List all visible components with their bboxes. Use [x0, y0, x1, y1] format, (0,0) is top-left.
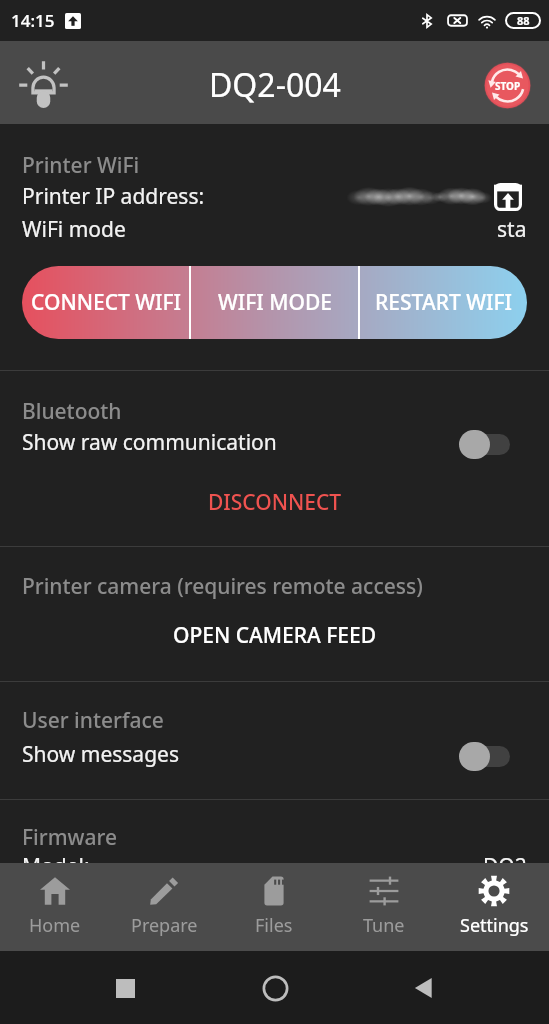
staticText: Files [255, 913, 293, 938]
button[interactable]: Toggle [459, 430, 510, 459]
staticText: Firmware [22, 823, 118, 852]
staticText: WIFI MODE [218, 288, 332, 317]
button[interactable]: Files [219, 863, 329, 951]
staticText: Home [29, 913, 81, 938]
staticText: Settings [460, 913, 529, 938]
staticText: DISCONNECT [208, 488, 342, 517]
button[interactable]: Tune [329, 863, 439, 951]
button[interactable]: CONNECT WIFI [22, 266, 189, 339]
button[interactable]: Settings [439, 863, 549, 951]
staticText: 88 [517, 13, 530, 28]
staticText: Bluetooth [22, 397, 122, 426]
staticText: Show raw communication [22, 428, 277, 457]
button[interactable]: Stop [478, 56, 536, 114]
button[interactable]: Open in browser [493, 182, 522, 211]
staticText: Printer WiFi [22, 151, 140, 180]
staticText: RESTART WIFI [375, 288, 512, 317]
staticText: 14:15 [11, 9, 55, 32]
staticText: CONNECT WIFI [31, 288, 181, 317]
button[interactable]: Home [250, 963, 300, 1013]
staticText: STOP [495, 79, 521, 93]
staticText: Printer IP address: [22, 182, 205, 211]
button[interactable]: Toggle light [12, 52, 74, 114]
staticText: Printer camera (requires remote access) [22, 572, 423, 601]
staticText: User interface [22, 706, 164, 735]
staticText: DQ2-004 [209, 63, 341, 107]
button[interactable]: DISCONNECT [0, 488, 549, 517]
button[interactable]: Home [0, 863, 109, 951]
button[interactable]: RESTART WIFI [360, 266, 527, 339]
staticText: sta [497, 215, 527, 244]
staticText: Prepare [131, 913, 198, 938]
button[interactable]: Back [399, 963, 449, 1013]
button[interactable]: Prepare [109, 863, 219, 951]
staticText: Show messages [22, 740, 179, 769]
staticText: Tune [363, 913, 405, 938]
button[interactable]: WIFI MODE [191, 266, 358, 339]
button[interactable]: Toggle [459, 742, 510, 771]
staticText: OPEN CAMERA FEED [173, 621, 377, 650]
button[interactable]: Recents [100, 963, 150, 1013]
staticText: Model: [22, 852, 90, 881]
staticText: WiFi mode [22, 215, 126, 244]
staticText: DQ2 [483, 852, 527, 881]
button[interactable]: OPEN CAMERA FEED [0, 621, 549, 650]
